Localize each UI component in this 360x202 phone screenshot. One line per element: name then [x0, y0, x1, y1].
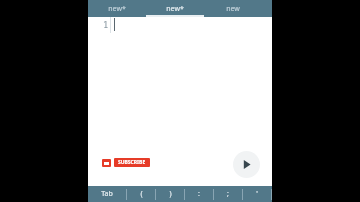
- staticText: (: [140, 189, 143, 199]
- staticText: new: [226, 4, 240, 14]
- staticText: ': [256, 189, 258, 199]
- button[interactable]: Run: [233, 151, 260, 178]
- staticText: new*: [108, 4, 126, 14]
- staticText: new*: [166, 4, 184, 14]
- staticText: 1: [103, 18, 109, 30]
- staticText: Tab: [101, 189, 113, 199]
- button[interactable]: ': [243, 186, 271, 202]
- staticText: :: [198, 189, 200, 199]
- button[interactable]: :: [185, 186, 213, 202]
- button[interactable]: new*: [88, 0, 146, 17]
- button[interactable]: Tab: [88, 186, 126, 202]
- staticText: ): [169, 189, 172, 199]
- button[interactable]: ): [156, 186, 184, 202]
- button[interactable]: ;: [214, 186, 242, 202]
- staticText: ;: [227, 189, 229, 199]
- button[interactable]: SUBSCRIBE: [102, 158, 150, 167]
- button[interactable]: new: [204, 0, 262, 17]
- button[interactable]: new*: [146, 0, 204, 17]
- button[interactable]: (: [127, 186, 155, 202]
- staticText: SUBSCRIBE: [118, 159, 146, 166]
